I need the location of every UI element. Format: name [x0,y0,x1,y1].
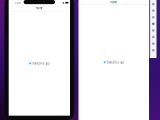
staticText: Home [110,0,117,4]
staticText: Blank JS-Vue app [107,61,125,64]
button[interactable]: Tool 6 [150,35,156,39]
button[interactable]: Tool 3 [150,16,156,19]
button[interactable]: Tool 5 [150,29,156,32]
staticText: Blank JS-Vue app [32,62,50,65]
staticText: 1:33 [14,1,21,4]
button[interactable]: Tool 7 [150,42,156,45]
staticText: Home [36,6,43,10]
button[interactable]: Tool 1 [150,2,156,6]
button[interactable]: Tool 2 [150,9,156,12]
button[interactable]: Tool 4 [150,22,156,25]
button[interactable]: Tool 8 [150,49,156,52]
